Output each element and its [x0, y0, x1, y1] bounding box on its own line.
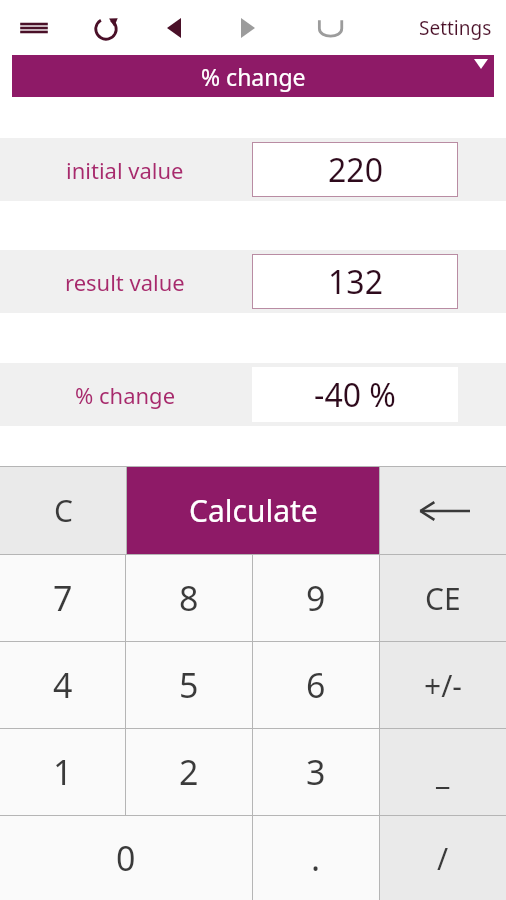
button[interactable]: Menu: [6, 0, 62, 55]
staticText: 7: [53, 575, 73, 621]
button[interactable]: 1: [0, 729, 125, 815]
staticText: 9: [306, 575, 326, 621]
button[interactable]: 2: [126, 729, 252, 815]
button[interactable]: Next: [220, 0, 276, 55]
staticText: _: [436, 752, 450, 793]
button[interactable]: Backspace: [380, 467, 506, 554]
staticText: % change: [201, 61, 306, 92]
button[interactable]: 3: [253, 729, 379, 815]
button[interactable]: result value: [0, 250, 506, 313]
staticText: CE: [425, 578, 461, 619]
button[interactable]: 6: [253, 642, 379, 728]
staticText: result value: [65, 267, 185, 297]
button[interactable]: 0: [0, 816, 252, 900]
staticText: Calculate: [189, 490, 318, 531]
staticText: C: [54, 490, 73, 531]
staticText: +/-: [424, 665, 462, 706]
staticText: 132: [328, 260, 383, 304]
button[interactable]: CE: [380, 555, 506, 641]
button[interactable]: .: [253, 816, 379, 900]
staticText: % change: [75, 380, 176, 410]
button[interactable]: _: [380, 729, 506, 815]
button[interactable]: 7: [0, 555, 125, 641]
button[interactable]: Previous: [146, 0, 202, 55]
staticText: .: [311, 835, 321, 881]
button[interactable]: +/-: [380, 642, 506, 728]
staticText: 220: [328, 148, 383, 192]
button[interactable]: Refresh: [78, 0, 134, 55]
staticText: 8: [179, 575, 199, 621]
staticText: Settings: [419, 15, 492, 41]
button[interactable]: Undo: [302, 0, 358, 55]
staticText: /: [437, 838, 449, 879]
button[interactable]: % change: [0, 363, 506, 426]
button[interactable]: Settings: [411, 5, 500, 51]
button[interactable]: 4: [0, 642, 125, 728]
button[interactable]: % change: [12, 55, 494, 97]
staticText: 0: [116, 835, 136, 881]
button[interactable]: Calculate: [127, 467, 379, 554]
staticText: 6: [306, 662, 326, 708]
staticText: 4: [53, 662, 73, 708]
button[interactable]: 9: [253, 555, 379, 641]
button[interactable]: C: [0, 467, 126, 554]
staticText: -40 %: [314, 373, 396, 417]
button[interactable]: /: [380, 816, 506, 900]
button[interactable]: 5: [126, 642, 252, 728]
staticText: 5: [179, 662, 199, 708]
staticText: 1: [53, 749, 73, 795]
staticText: 2: [179, 749, 199, 795]
staticText: initial value: [66, 155, 184, 185]
button[interactable]: initial value: [0, 138, 506, 201]
staticText: 3: [306, 749, 326, 795]
button[interactable]: 8: [126, 555, 252, 641]
